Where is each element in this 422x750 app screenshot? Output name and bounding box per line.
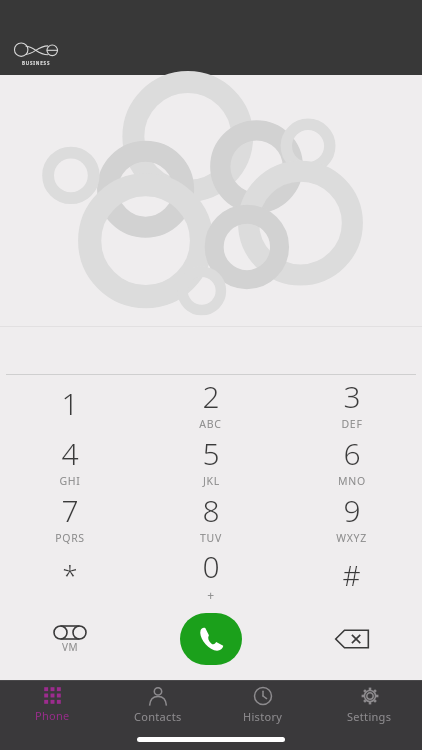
staticText: 5 bbox=[202, 433, 220, 474]
staticText: WXYZ bbox=[336, 531, 367, 545]
button[interactable]: 3 bbox=[281, 375, 422, 432]
button[interactable]: Contacts bbox=[105, 681, 210, 728]
button[interactable]: 0 bbox=[140, 546, 281, 603]
staticText: 1 bbox=[61, 383, 79, 424]
staticText: 3 bbox=[343, 376, 361, 417]
staticText: TUV bbox=[200, 531, 222, 545]
staticText: VM bbox=[62, 640, 79, 654]
staticText: Phone bbox=[35, 708, 70, 723]
staticText: JKL bbox=[203, 474, 220, 488]
button[interactable]: 7 bbox=[0, 489, 140, 546]
button[interactable]: * bbox=[0, 546, 140, 603]
button[interactable]: 6 bbox=[281, 432, 422, 489]
button[interactable]: Settings bbox=[316, 681, 422, 728]
staticText: PQRS bbox=[55, 531, 85, 545]
staticText: 2 bbox=[202, 376, 220, 417]
staticText: GHI bbox=[59, 474, 81, 488]
staticText: # bbox=[342, 556, 361, 594]
button[interactable]: # bbox=[281, 546, 422, 603]
button[interactable]: 9 bbox=[281, 489, 422, 546]
staticText: Settings bbox=[347, 709, 392, 724]
staticText: Contacts bbox=[134, 709, 182, 724]
staticText: History bbox=[243, 709, 283, 724]
staticText: 6 bbox=[343, 433, 361, 474]
button[interactable]: 1 bbox=[0, 375, 140, 432]
button[interactable]: History bbox=[210, 681, 316, 728]
button[interactable]: Phone bbox=[0, 681, 105, 728]
button[interactable]: 2 bbox=[140, 375, 281, 432]
button[interactable]: 8 bbox=[140, 489, 281, 546]
button[interactable]: Voicemail bbox=[0, 608, 140, 670]
staticText: 4 bbox=[61, 433, 79, 474]
staticText: 8 bbox=[202, 490, 220, 531]
staticText: 7 bbox=[61, 490, 79, 531]
staticText: 9 bbox=[343, 490, 361, 531]
button[interactable]: Call bbox=[180, 613, 242, 665]
staticText: BUSINESS bbox=[22, 60, 51, 66]
staticText: ABC bbox=[199, 417, 222, 431]
button[interactable]: 4 bbox=[0, 432, 140, 489]
staticText: * bbox=[62, 556, 78, 594]
staticText: + bbox=[207, 587, 215, 603]
button[interactable]: Backspace bbox=[281, 608, 422, 670]
staticText: DEF bbox=[341, 417, 363, 431]
staticText: 0 bbox=[202, 546, 220, 587]
button[interactable]: 5 bbox=[140, 432, 281, 489]
staticText: MNO bbox=[338, 474, 366, 488]
